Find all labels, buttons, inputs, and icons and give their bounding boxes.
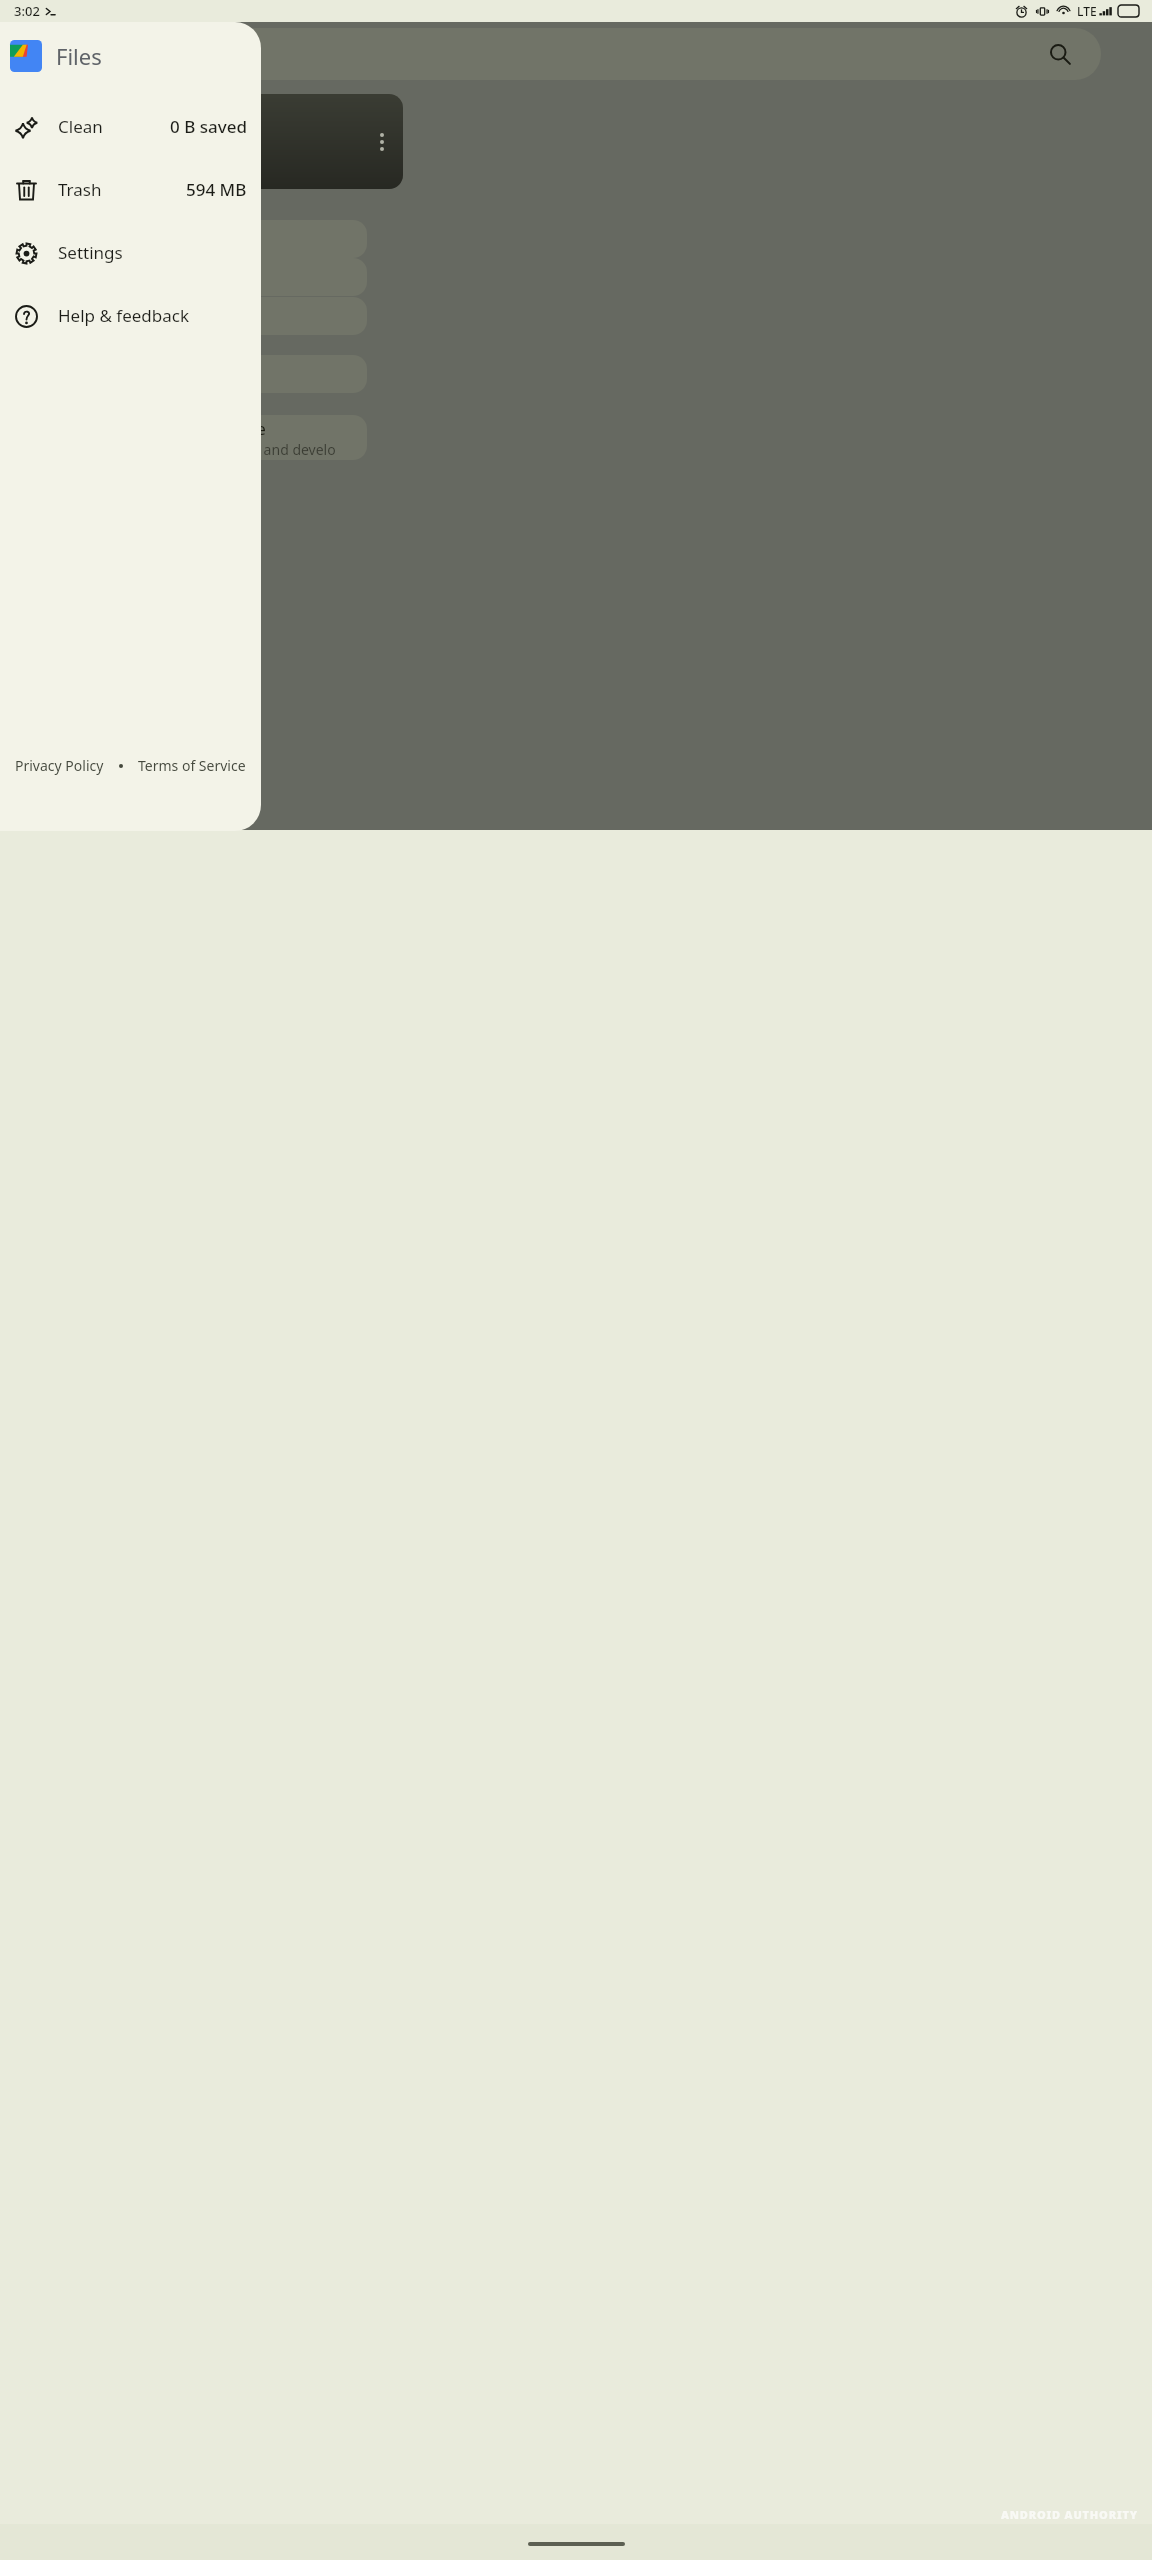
- button[interactable]: See all: [200, 78, 264, 113]
- button[interactable]: Trash: [0, 158, 261, 221]
- staticText: Other storage: [154, 417, 266, 440]
- staticText: 594 MB: [186, 178, 247, 201]
- button[interactable]: Files: [0, 34, 261, 78]
- button[interactable]: Search: [18, 28, 1101, 80]
- staticText: Trash: [58, 178, 102, 201]
- staticText: Trash: [186, 122, 207, 133]
- staticText: Internal storage and develo: [154, 440, 336, 459]
- staticText: ANDROID AUTHORITY: [1001, 2507, 1138, 2522]
- button[interactable]: More options: [375, 128, 389, 156]
- button[interactable]: Apps: [140, 297, 367, 335]
- staticText: LTE: [1077, 3, 1097, 19]
- other: Search: [1049, 43, 1071, 65]
- staticText: Settings: [58, 241, 123, 264]
- staticText: 3:02: [14, 2, 40, 20]
- button[interactable]: Help & feedback: [0, 284, 261, 347]
- button[interactable]: Safe folder: [140, 355, 367, 393]
- button[interactable]: Images: [140, 220, 367, 258]
- staticText: 0 B saved: [170, 115, 247, 138]
- button[interactable]: Other storage: [140, 415, 367, 460]
- staticText: Help & feedback: [58, 304, 190, 327]
- button[interactable]: Screens…: [163, 94, 403, 189]
- staticText: Clean: [58, 115, 103, 138]
- staticText: Help & feedback: [186, 177, 248, 188]
- button[interactable]: Terms of Service: [136, 752, 248, 779]
- button[interactable]: Settings: [0, 221, 261, 284]
- button[interactable]: Privacy Policy: [13, 752, 106, 779]
- button[interactable]: Clean: [0, 95, 261, 158]
- button[interactable]: Audio: [140, 258, 367, 296]
- staticText: Apps: [154, 305, 194, 328]
- staticText: Files: [56, 41, 102, 71]
